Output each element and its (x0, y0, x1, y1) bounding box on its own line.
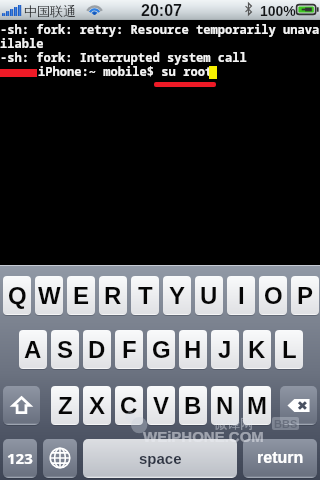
staticText: K (248, 336, 266, 363)
button[interactable]: A (19, 330, 47, 369)
staticText: X (89, 392, 106, 419)
staticText: W (38, 282, 61, 309)
staticText: N (216, 392, 234, 419)
button[interactable]: D (83, 330, 111, 369)
button[interactable]: T (131, 276, 159, 315)
staticText: A (24, 336, 42, 363)
button[interactable]: U (195, 276, 223, 315)
staticText: S (57, 336, 74, 363)
staticText: 微锋网 (214, 415, 253, 431)
button[interactable]: R (99, 276, 127, 315)
button[interactable]: return (243, 439, 317, 478)
button[interactable]: K (243, 330, 271, 369)
button[interactable]: Switch keyboard (43, 439, 77, 478)
staticText: Z (58, 392, 73, 419)
staticText: space (139, 450, 182, 467)
button[interactable]: 123 (3, 439, 37, 478)
staticText: J (218, 336, 232, 363)
staticText: 20:07 (141, 2, 182, 20)
staticText: U (200, 282, 218, 309)
staticText: O (264, 282, 283, 309)
button[interactable]: Y (163, 276, 191, 315)
button[interactable]: X (83, 386, 111, 425)
staticText: WEiPHONE.COM (143, 428, 264, 445)
staticText: T (138, 282, 153, 309)
button[interactable]: W (35, 276, 63, 315)
button[interactable]: H (179, 330, 207, 369)
staticText: Y (169, 282, 186, 309)
button[interactable]: I (227, 276, 255, 315)
button[interactable]: B (179, 386, 207, 425)
button[interactable]: P (291, 276, 319, 315)
button[interactable]: S (51, 330, 79, 369)
button[interactable]: F (115, 330, 143, 369)
staticText: ilable (0, 35, 44, 51)
staticText: D (88, 336, 106, 363)
button[interactable]: Shift (3, 386, 40, 425)
button[interactable]: L (275, 330, 303, 369)
staticText: H (184, 336, 202, 363)
staticText: Q (8, 282, 27, 309)
staticText: R (104, 282, 122, 309)
staticText: -sh: fork: Interrupted system call (0, 49, 247, 65)
staticText: -sh: fork: retry: Resource temporarily u… (0, 21, 320, 37)
staticText: V (153, 392, 170, 419)
button[interactable]: space (83, 439, 237, 478)
button[interactable]: G (147, 330, 175, 369)
button[interactable]: Q (3, 276, 31, 315)
staticText: B (184, 392, 202, 419)
staticText: F (122, 336, 137, 363)
staticText: I (238, 282, 245, 309)
staticText: BBS (274, 418, 298, 430)
staticText: return (257, 449, 304, 467)
staticText: C (120, 392, 138, 419)
staticText: 123 (7, 448, 33, 468)
button[interactable]: N (211, 386, 239, 425)
button[interactable]: O (259, 276, 287, 315)
button[interactable]: V (147, 386, 175, 425)
staticText: L (282, 336, 297, 363)
staticText: 100% (260, 3, 296, 19)
staticText: iPhone:~ mobile$ su root (38, 63, 213, 79)
staticText: E (73, 282, 90, 309)
button[interactable]: Backspace (280, 386, 317, 425)
staticText: M (247, 392, 267, 419)
button[interactable]: E (67, 276, 95, 315)
staticText: P (297, 282, 314, 309)
button[interactable]: M (243, 386, 271, 425)
staticText: 中国联通 (24, 3, 76, 19)
button[interactable]: J (211, 330, 239, 369)
staticText: G (152, 336, 171, 363)
button[interactable]: C (115, 386, 143, 425)
button[interactable]: Z (51, 386, 79, 425)
